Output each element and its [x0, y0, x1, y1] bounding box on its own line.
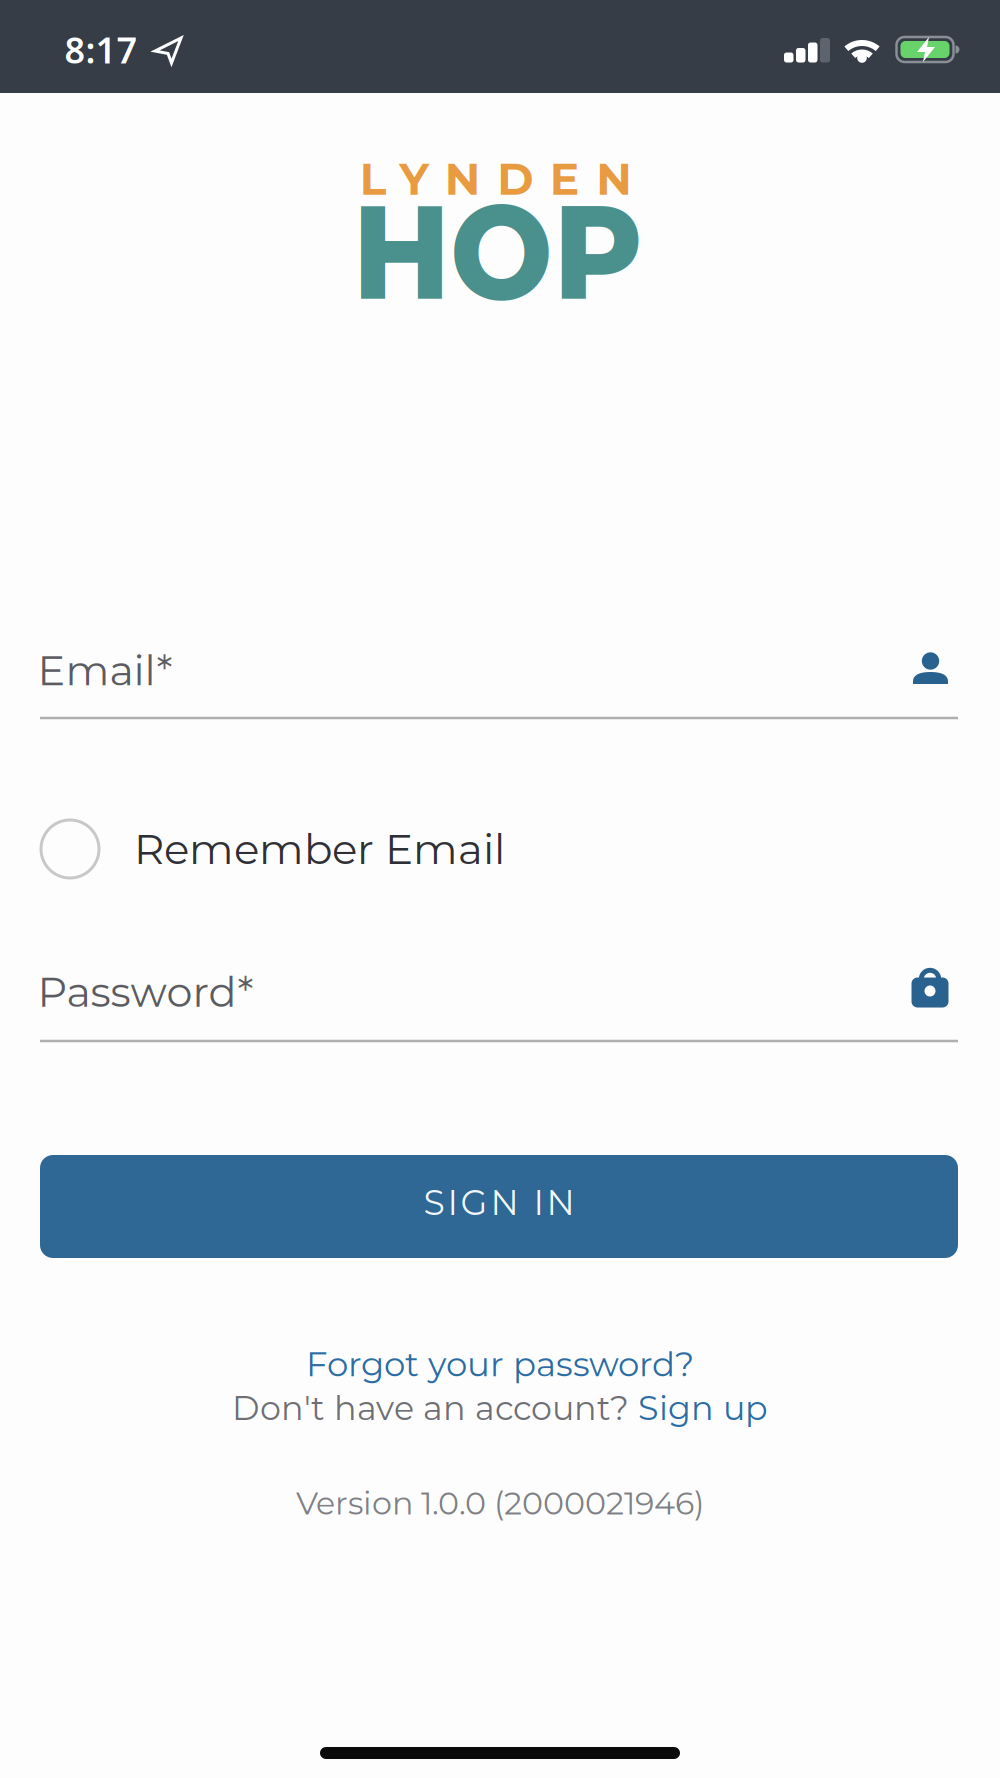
staticText: Remember Email — [134, 823, 505, 875]
staticText: Version 1.0.0 (2000021946) — [296, 1484, 704, 1522]
button[interactable]: Forgot your password? — [306, 1343, 694, 1385]
staticText: Forgot your password? — [306, 1343, 694, 1385]
staticText: 8:17 — [64, 26, 137, 73]
staticText: Email* — [37, 645, 172, 696]
button[interactable]: Sign up — [638, 1388, 768, 1428]
staticText: Sign up — [638, 1388, 768, 1428]
staticText: Password* — [37, 967, 253, 1017]
staticText: HOP — [340, 171, 655, 332]
button[interactable]: Remember Email — [41, 809, 959, 889]
staticText: LYNDEN — [360, 152, 632, 206]
staticText: SIGN IN — [423, 1181, 574, 1224]
button[interactable]: SIGN IN — [40, 1155, 958, 1258]
staticText: Don't have an account? — [232, 1388, 638, 1428]
button[interactable]: Password* — [40, 947, 958, 1037]
button[interactable]: Email* — [40, 625, 958, 715]
